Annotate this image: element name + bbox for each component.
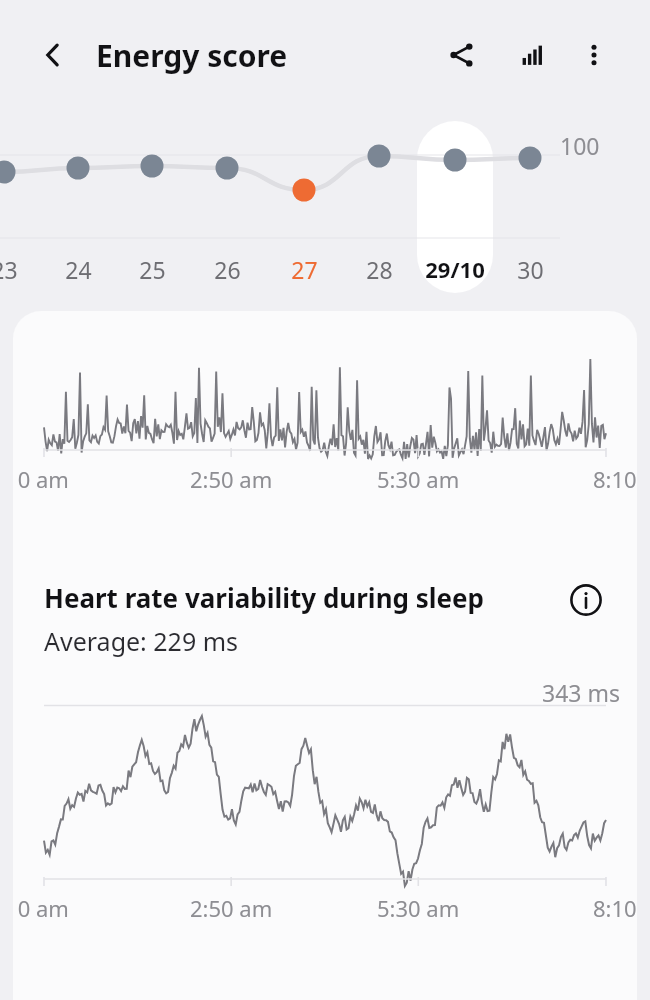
staticText: 5:30 am xyxy=(377,893,460,923)
staticText: 25 xyxy=(139,254,166,285)
button[interactable] xyxy=(417,121,493,293)
staticText: 12:10 am xyxy=(13,464,69,494)
staticText: 24 xyxy=(65,254,92,285)
staticText: Average: 229 ms xyxy=(44,624,239,658)
button[interactable]: More options xyxy=(571,32,617,78)
button[interactable]: 30 xyxy=(490,252,570,286)
button[interactable]: Heart rate variability during sleep xyxy=(44,576,544,618)
staticText: 30 xyxy=(517,254,544,285)
staticText: 100 xyxy=(560,130,600,161)
staticText: 5:30 am xyxy=(377,464,460,494)
staticText: 28 xyxy=(366,254,393,285)
staticText: 2:50 am xyxy=(190,464,273,494)
button[interactable]: 24 xyxy=(38,252,118,286)
button[interactable]: 25 xyxy=(112,252,192,286)
staticText: 8:10 am xyxy=(593,464,637,494)
button[interactable]: 27 xyxy=(264,252,344,286)
staticText: 26 xyxy=(214,254,241,285)
button[interactable]: 28 xyxy=(339,252,419,286)
staticText: Energy score xyxy=(96,35,288,76)
button[interactable]: Share xyxy=(439,32,485,78)
button[interactable]: Information xyxy=(565,579,607,621)
staticText: Heart rate variability during sleep xyxy=(44,580,484,615)
button[interactable]: 26 xyxy=(187,252,267,286)
staticText: 343 ms xyxy=(542,677,620,707)
button[interactable]: Energy score xyxy=(96,33,288,77)
staticText: 8:10 am xyxy=(593,893,637,923)
staticText: 12:10 am xyxy=(13,893,69,923)
staticText: 2:50 am xyxy=(190,893,273,923)
staticText: 23 xyxy=(0,254,18,285)
button[interactable]: 29/10 xyxy=(415,252,495,286)
staticText: 27 xyxy=(291,254,318,285)
button[interactable]: 23 xyxy=(0,252,44,286)
staticText: 29/10 xyxy=(425,254,485,284)
button[interactable]: Statistics xyxy=(510,32,556,78)
button[interactable]: Back xyxy=(30,32,76,78)
